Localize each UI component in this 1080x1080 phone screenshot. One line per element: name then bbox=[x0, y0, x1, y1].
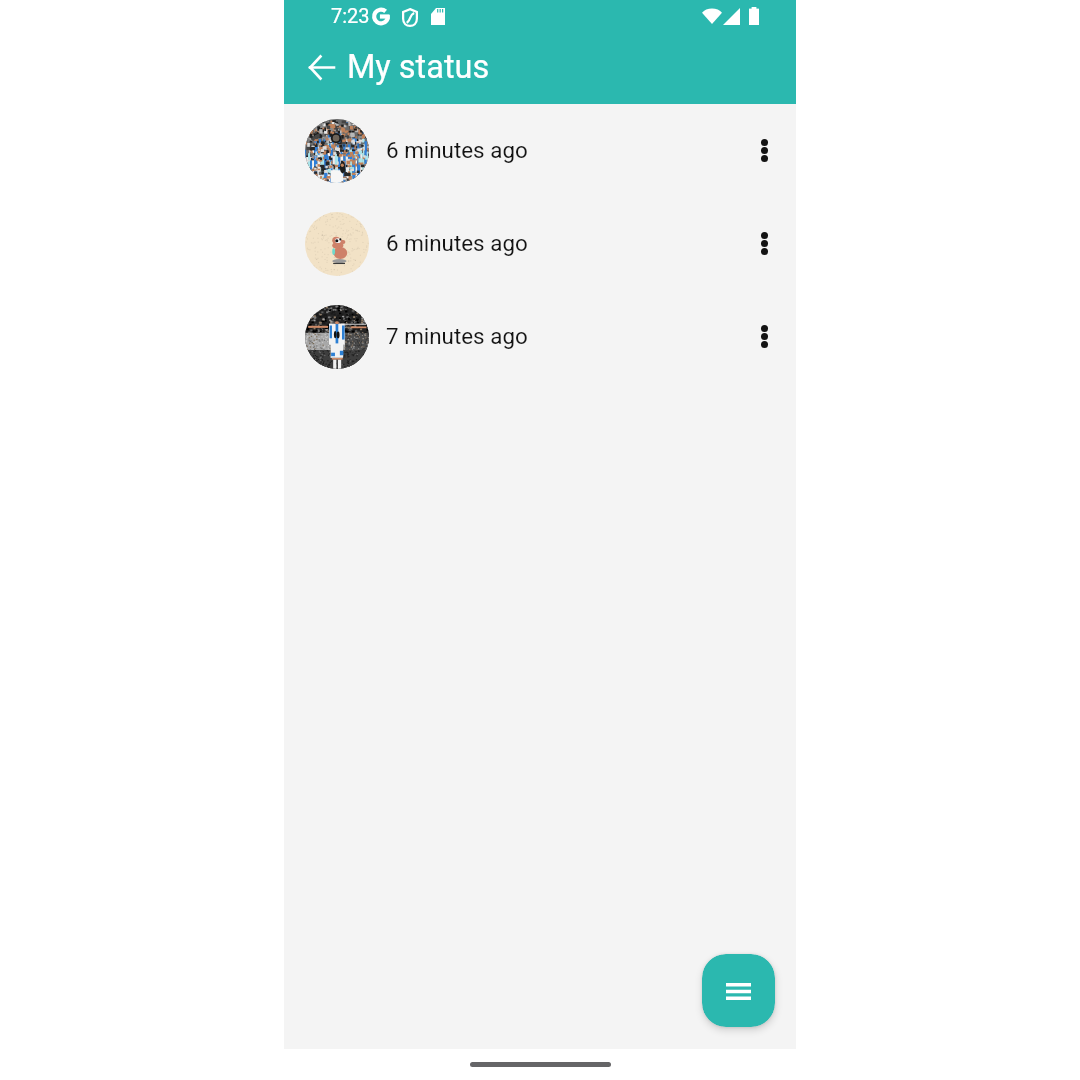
button[interactable]: 6 minutes ago bbox=[284, 197, 796, 290]
staticText: 6 minutes ago bbox=[386, 230, 528, 256]
button[interactable]: 7 minutes ago bbox=[284, 290, 796, 383]
button[interactable]: More options bbox=[740, 126, 788, 174]
staticText: My status bbox=[347, 48, 490, 86]
staticText: 6 minutes ago bbox=[386, 137, 528, 163]
staticText: 7:23 bbox=[331, 4, 370, 27]
button[interactable]: Menu bbox=[702, 954, 775, 1027]
staticText: 7 minutes ago bbox=[386, 323, 528, 349]
button[interactable]: More options bbox=[740, 219, 788, 267]
button[interactable]: More options bbox=[740, 312, 788, 360]
button[interactable]: 6 minutes ago bbox=[284, 104, 796, 197]
button[interactable]: Back bbox=[297, 43, 345, 91]
